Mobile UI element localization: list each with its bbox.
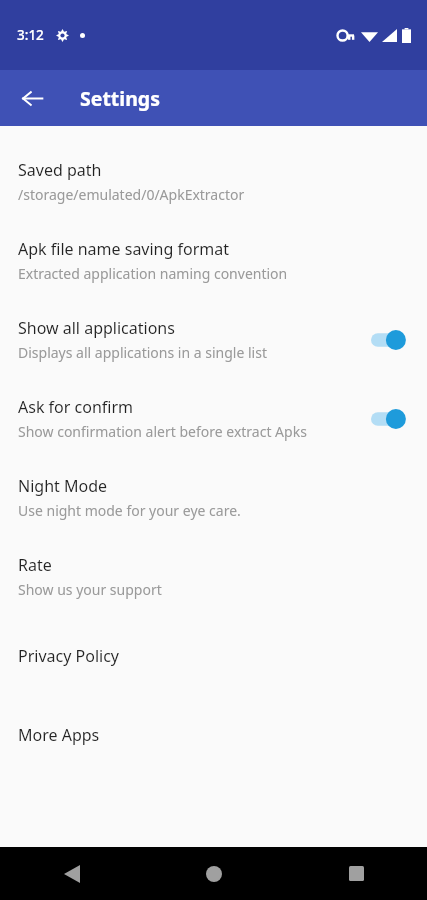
staticText: Settings — [80, 85, 160, 112]
button[interactable]: Show all applications — [0, 300, 427, 379]
staticText: Show us your support — [18, 580, 162, 599]
staticText: 3:12 — [17, 26, 44, 44]
button[interactable]: Toggle Show all applications — [371, 327, 409, 353]
button[interactable]: Night Mode — [0, 458, 427, 537]
staticText: Ask for confirm — [18, 396, 133, 418]
staticText: Show all applications — [18, 317, 175, 339]
staticText: Saved path — [18, 159, 102, 181]
button[interactable]: Toggle Ask for confirm — [371, 406, 409, 432]
button[interactable]: Apk file name saving format — [0, 221, 427, 300]
button[interactable]: Home — [143, 847, 285, 900]
button[interactable]: Back — [0, 847, 143, 900]
staticText: More Apps — [18, 724, 100, 746]
staticText: Extracted application naming convention — [18, 264, 288, 283]
button[interactable]: Saved path — [0, 142, 427, 221]
staticText: Use night mode for your eye care. — [18, 501, 241, 520]
button[interactable]: Back — [10, 76, 54, 120]
button[interactable]: Rate — [0, 537, 427, 616]
staticText: Night Mode — [18, 475, 108, 497]
staticText: Rate — [18, 554, 52, 576]
button[interactable]: Ask for confirm — [0, 379, 427, 458]
button[interactable]: Privacy Policy — [0, 616, 427, 695]
staticText: Privacy Policy — [18, 645, 119, 667]
staticText: /storage/emulated/0/ApkExtractor — [18, 185, 245, 204]
staticText: Apk file name saving format — [18, 238, 230, 260]
button[interactable]: More Apps — [0, 695, 427, 774]
staticText: Displays all applications in a single li… — [18, 343, 267, 362]
button[interactable]: Recent apps — [285, 847, 427, 900]
staticText: Show confirmation alert before extract A… — [18, 422, 307, 441]
